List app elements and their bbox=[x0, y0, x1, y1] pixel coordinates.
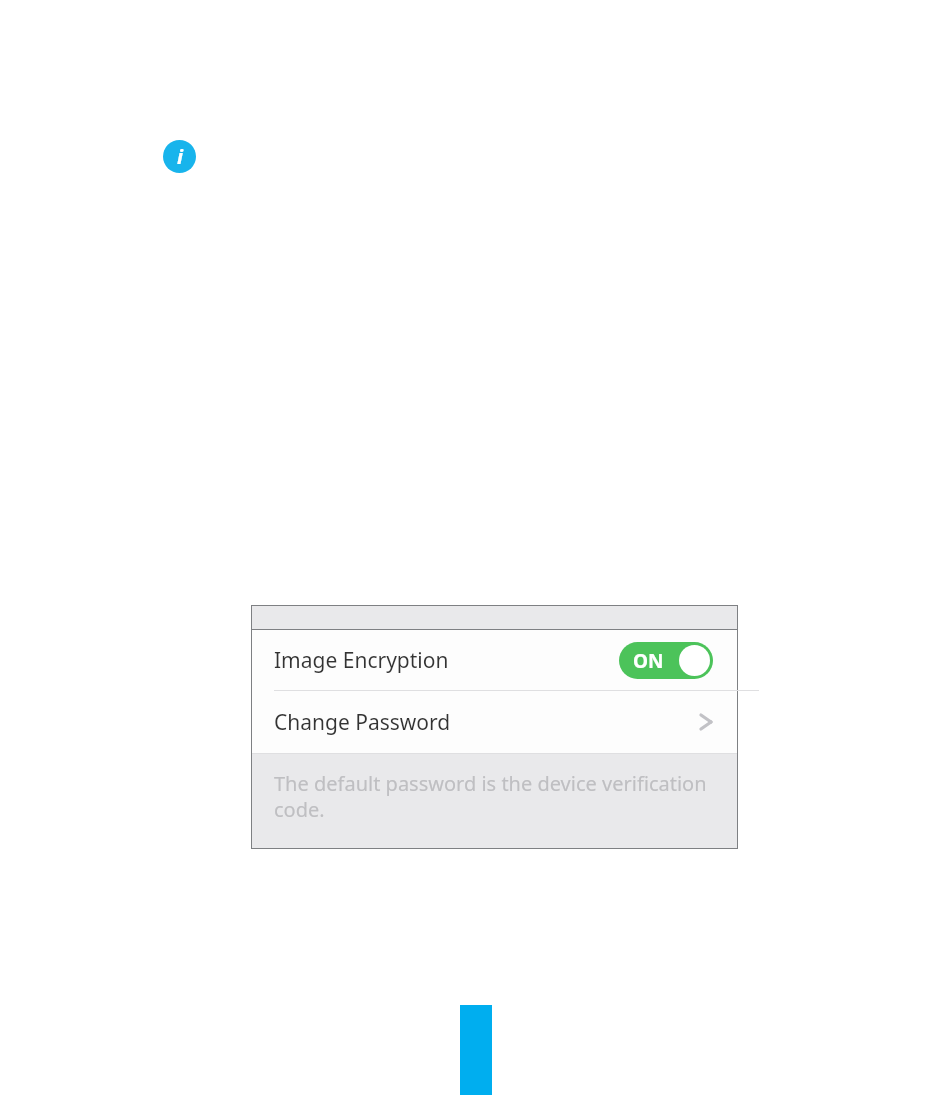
button[interactable]: Information bbox=[163, 140, 196, 173]
button[interactable]: Image Encryption on bbox=[619, 642, 713, 679]
staticText: i bbox=[177, 143, 183, 170]
button[interactable]: Change Password bbox=[252, 691, 737, 753]
button[interactable]: Image Encryption bbox=[252, 630, 737, 691]
staticText: ON bbox=[633, 648, 664, 674]
staticText: Change Password bbox=[274, 708, 451, 737]
staticText: The default password is the device verif… bbox=[274, 770, 707, 823]
staticText: Image Encryption bbox=[274, 646, 449, 675]
